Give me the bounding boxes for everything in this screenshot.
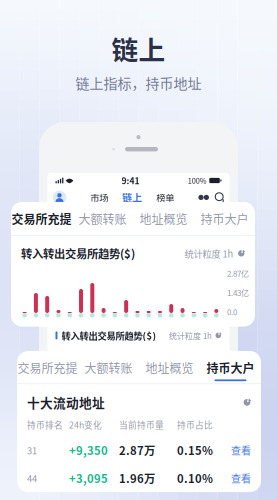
- button[interactable]: 31: [17, 436, 261, 464]
- button[interactable]: 交易所充提: [17, 359, 78, 381]
- staticText: 转入转出交易所趋势($): [61, 329, 156, 342]
- button[interactable]: 地址概览: [133, 210, 194, 232]
- staticText: 转入转出交易所趋势($): [21, 245, 135, 262]
- staticText: +3,095: [69, 470, 108, 486]
- staticText: 榜单: [156, 191, 174, 204]
- staticText: 0.10%: [177, 470, 213, 486]
- staticText: 查看: [231, 471, 251, 485]
- staticText: 统计粒度 1h: [184, 247, 233, 260]
- button[interactable]: Search: [214, 192, 225, 203]
- staticText: 0.0: [227, 306, 237, 318]
- button[interactable]: Account: [52, 190, 66, 204]
- staticText: 0.15%: [177, 442, 213, 458]
- staticText: 查看: [231, 443, 251, 457]
- staticText: 地址概览: [145, 359, 193, 376]
- staticText: 1.96万: [119, 470, 155, 486]
- button[interactable]: 大额转账: [72, 210, 133, 232]
- staticText: 持币大户: [206, 359, 254, 376]
- staticText: 链上指标，持币地址: [75, 73, 201, 93]
- staticText: 链上: [111, 29, 165, 68]
- button[interactable]: 链上: [122, 190, 142, 205]
- button[interactable]: 持币大户: [194, 210, 255, 232]
- button[interactable]: 榜单: [156, 191, 174, 204]
- staticText: 统计粒度 1h: [169, 330, 212, 341]
- staticText: 1.43亿: [227, 287, 249, 298]
- staticText: 持币排名: [27, 418, 63, 431]
- staticText: 大额转账: [84, 359, 132, 376]
- staticText: 地址概览: [139, 210, 187, 227]
- staticText: 交易所充提: [17, 359, 77, 376]
- staticText: 大额转账: [78, 210, 126, 227]
- staticText: 当前持币量: [119, 418, 164, 431]
- staticText: 交易所充提: [11, 210, 71, 227]
- staticText: 链上: [122, 190, 142, 205]
- button[interactable]: 交易所充提: [11, 210, 72, 232]
- staticText: 100%: [188, 175, 207, 186]
- button[interactable]: 地址概览: [139, 359, 200, 381]
- staticText: 持币大户: [200, 210, 248, 227]
- staticText: 持币占比: [177, 418, 213, 431]
- button[interactable]: 大额转账: [78, 359, 139, 381]
- staticText: 市场: [90, 191, 108, 204]
- staticText: 44: [27, 471, 37, 485]
- staticText: 9:41: [122, 174, 140, 187]
- button[interactable]: 市场: [90, 191, 108, 204]
- button[interactable]: 持币大户: [200, 359, 261, 381]
- button[interactable]: 44: [17, 464, 261, 492]
- staticText: +9,350: [69, 442, 108, 458]
- staticText: 2.87亿: [227, 268, 249, 279]
- staticText: 24h变化: [69, 418, 102, 431]
- staticText: 十大流动地址: [27, 393, 105, 411]
- button[interactable]: Compare: [198, 193, 209, 202]
- staticText: 2.87万: [119, 442, 155, 458]
- staticText: 31: [27, 443, 37, 457]
